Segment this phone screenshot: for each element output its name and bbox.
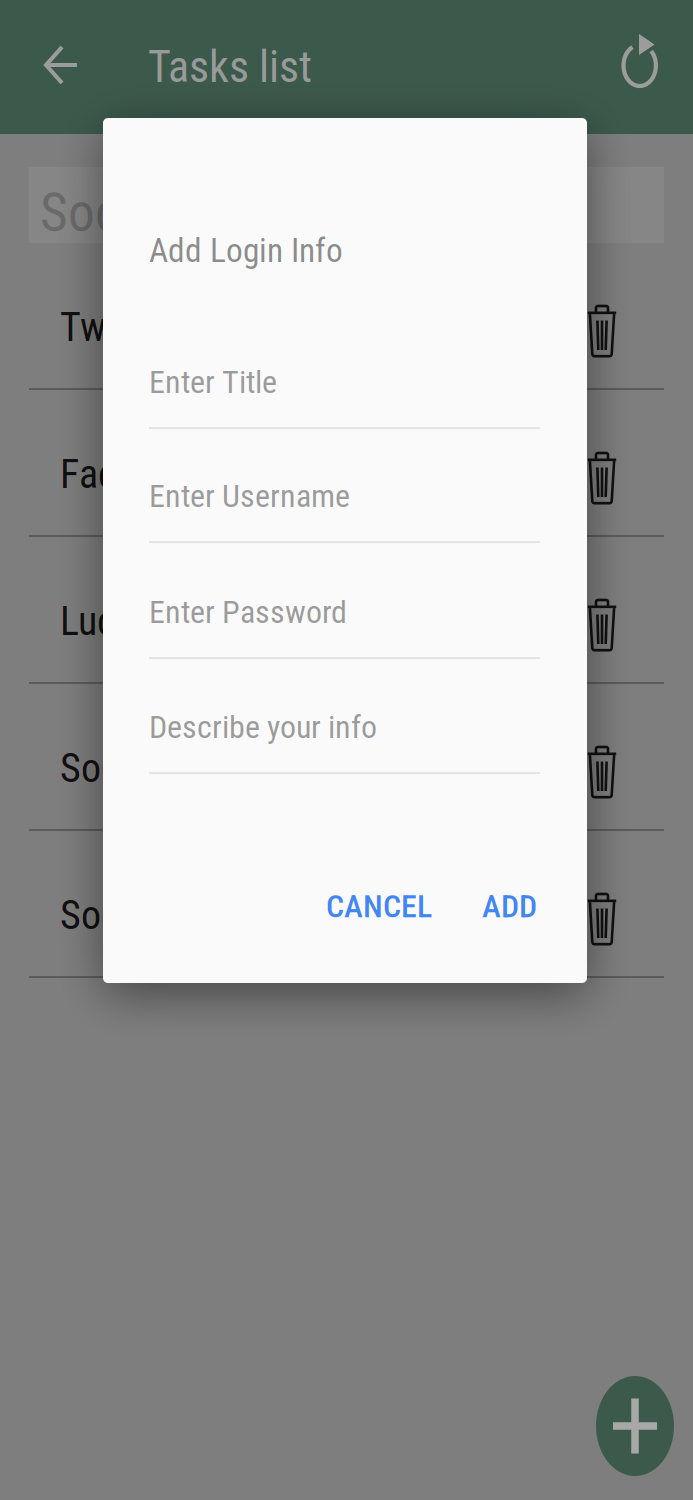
button[interactable]: Add task bbox=[596, 1376, 674, 1476]
button[interactable]: ADD bbox=[468, 876, 551, 936]
button[interactable]: Refresh bbox=[612, 36, 674, 98]
staticText: Social bbox=[40, 181, 170, 244]
button[interactable]: Facebook bbox=[0, 390, 693, 537]
staticText: Social bbox=[60, 745, 156, 792]
staticText: Enter Username bbox=[149, 477, 350, 515]
staticText: Enter Title bbox=[149, 363, 277, 401]
staticText: Lucid bbox=[60, 598, 144, 645]
button[interactable]: Twitter bbox=[0, 243, 693, 390]
staticText: Social bbox=[60, 892, 156, 939]
button[interactable]: CANCEL bbox=[312, 876, 446, 936]
button[interactable]: Back bbox=[28, 36, 90, 98]
staticText: CANCEL bbox=[326, 887, 432, 925]
staticText: Tasks list bbox=[148, 41, 312, 93]
staticText: Facebook bbox=[60, 451, 213, 498]
staticText: Twitter bbox=[60, 304, 170, 351]
button[interactable]: Social bbox=[0, 684, 693, 831]
staticText: ADD bbox=[482, 887, 537, 925]
staticText: Enter Password bbox=[149, 593, 347, 631]
button[interactable]: Lucid bbox=[0, 537, 693, 684]
staticText: Describe your info bbox=[149, 708, 377, 746]
button[interactable]: Social bbox=[0, 831, 693, 978]
staticText: Add Login Info bbox=[149, 231, 343, 270]
